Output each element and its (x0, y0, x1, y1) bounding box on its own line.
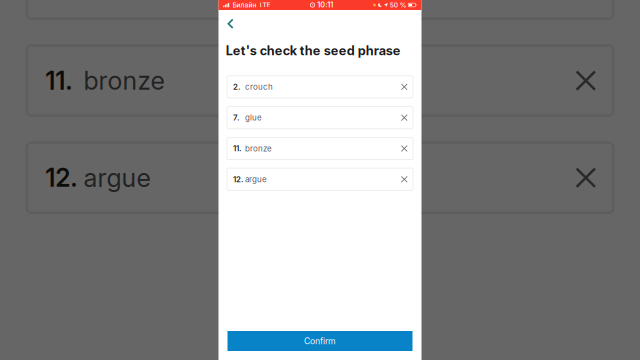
button[interactable]: Back (218, 14, 241, 33)
staticText: Confirm (304, 336, 336, 346)
staticText: 50 % (390, 1, 407, 9)
staticText: LTE (260, 1, 271, 9)
button[interactable]: Confirm (227, 331, 412, 351)
button[interactable]: 7. (227, 106, 413, 129)
staticText: bronze (245, 144, 272, 153)
staticText: 2. (233, 82, 241, 92)
staticText: argue (83, 162, 150, 193)
staticText: 10:11 (317, 1, 333, 9)
staticText: crouch (245, 82, 273, 92)
button[interactable]: 11. (227, 137, 413, 160)
staticText: argue (245, 174, 267, 184)
button[interactable]: 7. (27, 0, 613, 19)
staticText: 12. (233, 174, 244, 184)
button[interactable]: 12. (27, 143, 613, 213)
button[interactable]: 12. (227, 168, 413, 190)
button[interactable]: 11. (27, 45, 613, 116)
staticText: Билайн (233, 1, 257, 9)
staticText: Let's check the seed phrase (226, 43, 401, 58)
button[interactable]: 2. (227, 76, 413, 98)
staticText: 11. (45, 66, 72, 96)
staticText: 12. (45, 163, 77, 193)
staticText: glue (245, 113, 262, 122)
staticText: 7. (233, 113, 240, 122)
staticText: 11. (233, 144, 242, 153)
staticText: bronze (83, 65, 164, 96)
